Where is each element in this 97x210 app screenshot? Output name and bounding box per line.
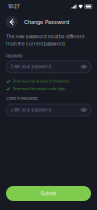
staticText: Enter your password [10,107,51,113]
staticText: Change Password [24,19,69,25]
staticText: from the current password [6,41,65,47]
button[interactable]: Back [5,16,17,28]
staticText: Confirm Password [6,96,37,101]
button[interactable]: Enter your password [6,104,91,116]
staticText: The new password must be different [6,34,84,39]
staticText: 10:27 [8,4,20,9]
button[interactable]: Submit [6,186,91,201]
button[interactable]: Enter your password [6,61,91,73]
staticText: Password [6,54,22,58]
staticText: Enter your password [10,64,51,69]
staticText: There must be unique code (hgh) [13,87,66,91]
staticText: There must be at least 8 characters [13,80,70,83]
staticText: Submit [40,191,56,196]
